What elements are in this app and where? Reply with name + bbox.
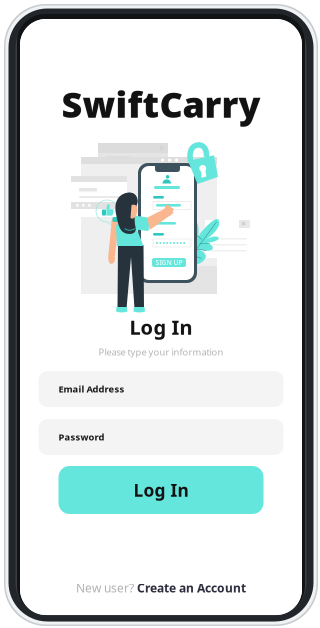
button[interactable]: Email Address	[38, 371, 283, 407]
staticText: Password	[58, 431, 104, 443]
staticText: SIGN UP	[155, 258, 182, 267]
staticText: SwiftCarry	[61, 80, 260, 128]
staticText: New user?	[76, 580, 134, 596]
staticText: Log In	[133, 478, 188, 501]
staticText: Please type your information	[98, 346, 223, 358]
button[interactable]: Password	[38, 419, 283, 455]
staticText: Create an Account	[137, 580, 246, 596]
staticText: Log In	[129, 314, 192, 340]
staticText: Email Address	[58, 383, 124, 395]
button[interactable]: New user?	[76, 580, 246, 596]
button[interactable]: Log In	[58, 466, 263, 514]
